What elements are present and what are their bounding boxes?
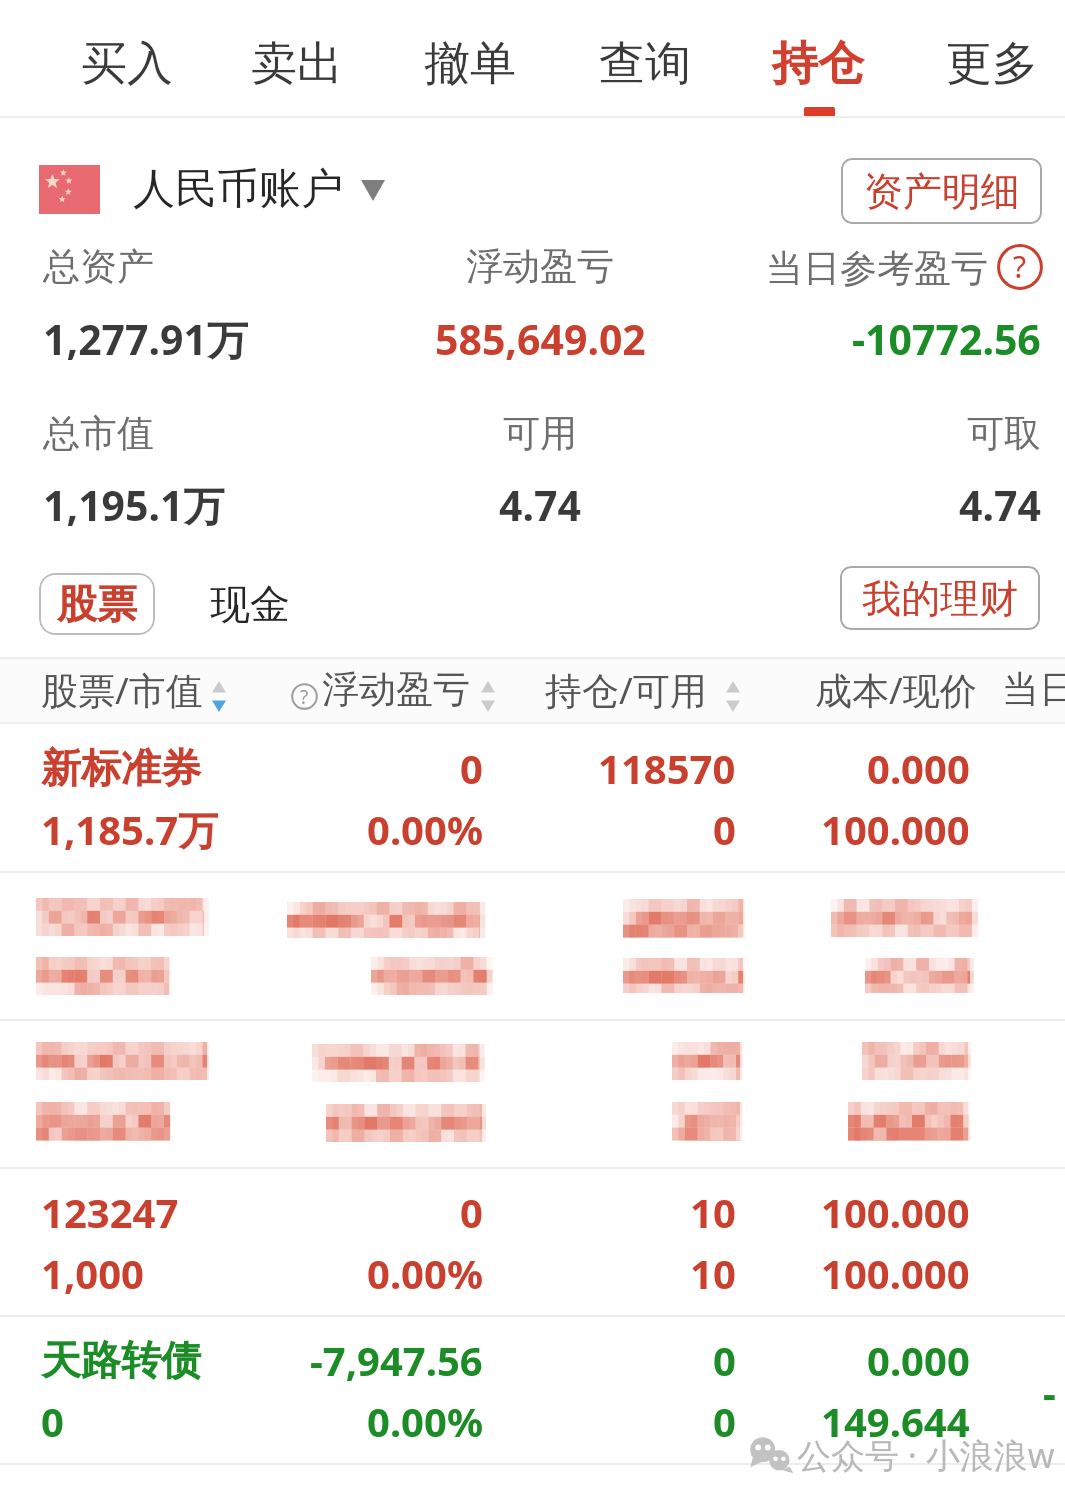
staticText: 浮动盈亏 (322, 666, 470, 713)
staticText: 买入 (81, 35, 173, 93)
staticText: 1,000 (41, 1246, 144, 1300)
staticText: 1,277.91万 (43, 311, 248, 367)
staticText: 0.000 (867, 1333, 970, 1387)
button[interactable]: 天路转债 (0, 1316, 1065, 1463)
button[interactable]: 新标准券 (0, 724, 1065, 871)
staticText: 当日参考盈亏 (766, 245, 988, 292)
staticText: -7,947.56 (310, 1333, 483, 1387)
button[interactable]: Sort by floating profit (481, 681, 495, 712)
staticText: 118570 (598, 741, 736, 795)
button[interactable]: 现金 (196, 573, 304, 635)
staticText: 4.74 (959, 477, 1041, 533)
button[interactable]: Sort by market value (212, 681, 226, 712)
staticText: 卖出 (251, 35, 343, 93)
staticText: 0.00% (367, 802, 483, 856)
staticText: 撤单 (424, 35, 516, 93)
button[interactable]: 资产明细 (841, 158, 1042, 224)
staticText: 股票 (57, 579, 137, 629)
staticText: 100.000 (821, 802, 970, 856)
staticText: 天路转债 (41, 1335, 201, 1385)
staticText: 149.644 (821, 1394, 970, 1448)
staticText: 持仓 (772, 35, 864, 93)
staticText: 4.74 (499, 477, 581, 533)
staticText: ? (1013, 246, 1027, 287)
button[interactable]: Sort by position (726, 681, 740, 712)
button[interactable] (0, 1020, 1065, 1167)
staticText: 585,649.02 (435, 311, 646, 367)
button[interactable]: 撤单 (384, 0, 556, 116)
staticText: 新标准券 (41, 743, 201, 793)
staticText: 公众号 · 小浪浪w (797, 1432, 1055, 1478)
staticText: 100.000 (821, 1185, 970, 1239)
staticText: 0 (41, 1394, 64, 1448)
staticText: 现金 (210, 579, 290, 629)
button[interactable]: 123247 (0, 1168, 1065, 1315)
staticText: 0 (713, 1333, 736, 1387)
staticText: 可用 (503, 410, 577, 457)
button[interactable]: 买入 (41, 0, 213, 116)
button[interactable] (0, 872, 1065, 1019)
staticText: 0.00% (367, 1246, 483, 1300)
staticText: -10772.56 (852, 311, 1041, 367)
button[interactable]: About floating profit (291, 683, 318, 710)
staticText: 100.000 (821, 1246, 970, 1300)
staticText: 持仓/可用 (545, 664, 707, 715)
staticText: 更多 (946, 35, 1038, 93)
staticText: - (1043, 1365, 1056, 1419)
button[interactable]: 持仓 (732, 0, 904, 116)
staticText: 123247 (41, 1185, 179, 1239)
staticText: 查询 (599, 35, 691, 93)
button[interactable]: 卖出 (211, 0, 383, 116)
button[interactable]: 人民币账户 (39, 160, 343, 218)
button[interactable]: 更多 (906, 0, 1065, 116)
staticText: 0 (460, 741, 483, 795)
staticText: 总市值 (43, 410, 154, 457)
staticText: 10 (690, 1246, 736, 1300)
staticText: 我的理财 (862, 574, 1018, 623)
staticText: 0.000 (867, 741, 970, 795)
staticText: 0.00% (367, 1394, 483, 1448)
staticText: 0 (713, 802, 736, 856)
button[interactable]: 股票 (39, 573, 155, 635)
staticText: 资产明细 (864, 167, 1020, 216)
button[interactable]: Help (997, 244, 1043, 290)
staticText: 1,195.1万 (43, 477, 225, 533)
staticText: 1,185.7万 (41, 802, 219, 857)
staticText: 股票/市值 (41, 664, 203, 715)
button[interactable]: 查询 (559, 0, 731, 116)
staticText: ? (300, 684, 309, 710)
staticText: 可取 (967, 410, 1041, 457)
staticText: 总资产 (43, 243, 154, 290)
button[interactable]: 我的理财 (840, 566, 1040, 630)
staticText: 浮动盈亏 (466, 243, 614, 290)
staticText: 0 (460, 1185, 483, 1239)
staticText: 当日 (1002, 666, 1065, 713)
staticText: 0 (713, 1394, 736, 1448)
staticText: 成本/现价 (815, 664, 977, 715)
staticText: 人民币账户 (133, 163, 343, 216)
staticText: 10 (690, 1185, 736, 1239)
